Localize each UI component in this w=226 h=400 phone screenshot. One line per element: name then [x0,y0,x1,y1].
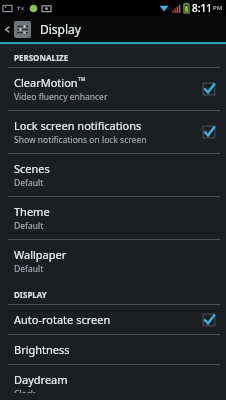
button[interactable]: Daydream [0,365,226,400]
staticText: 8:11 [192,1,212,15]
staticText: Brightness [14,342,70,357]
staticText: Scenes [14,161,50,176]
staticText: Show notifications on lock screen [14,134,147,146]
button[interactable]: ClearMotion [0,68,226,110]
staticText: Clock [14,388,36,393]
staticText: PERSONALIZE [14,52,69,63]
button[interactable]: Theme [0,197,226,239]
button[interactable]: Scenes [0,154,226,196]
button[interactable]: Wallpaper [0,240,226,282]
staticText: Wallpaper [14,247,67,262]
staticText: Lock screen notifications [14,118,142,133]
button[interactable]: Navigate up [0,19,33,40]
other: Toggle [202,82,216,96]
staticText: DISPLAY [14,289,47,300]
staticText: PM [213,4,223,12]
button[interactable]: Lock screen notifications [0,111,226,153]
button[interactable]: Auto-rotate screen [0,305,226,334]
staticText: Daydream [14,372,68,387]
other: Toggle [202,313,216,327]
staticText: Video fluency enhancer [14,91,108,103]
other: Toggle [202,125,216,139]
staticText: Default [14,263,44,275]
staticText: Default [14,177,44,189]
staticText: TM [78,76,86,83]
button[interactable]: Brightness [0,335,226,364]
staticText: Theme [14,204,50,219]
staticText: Auto-rotate screen [14,312,111,327]
staticText: Display [40,21,81,37]
staticText: ClearMotion [14,75,78,90]
staticText: Default [14,220,44,232]
